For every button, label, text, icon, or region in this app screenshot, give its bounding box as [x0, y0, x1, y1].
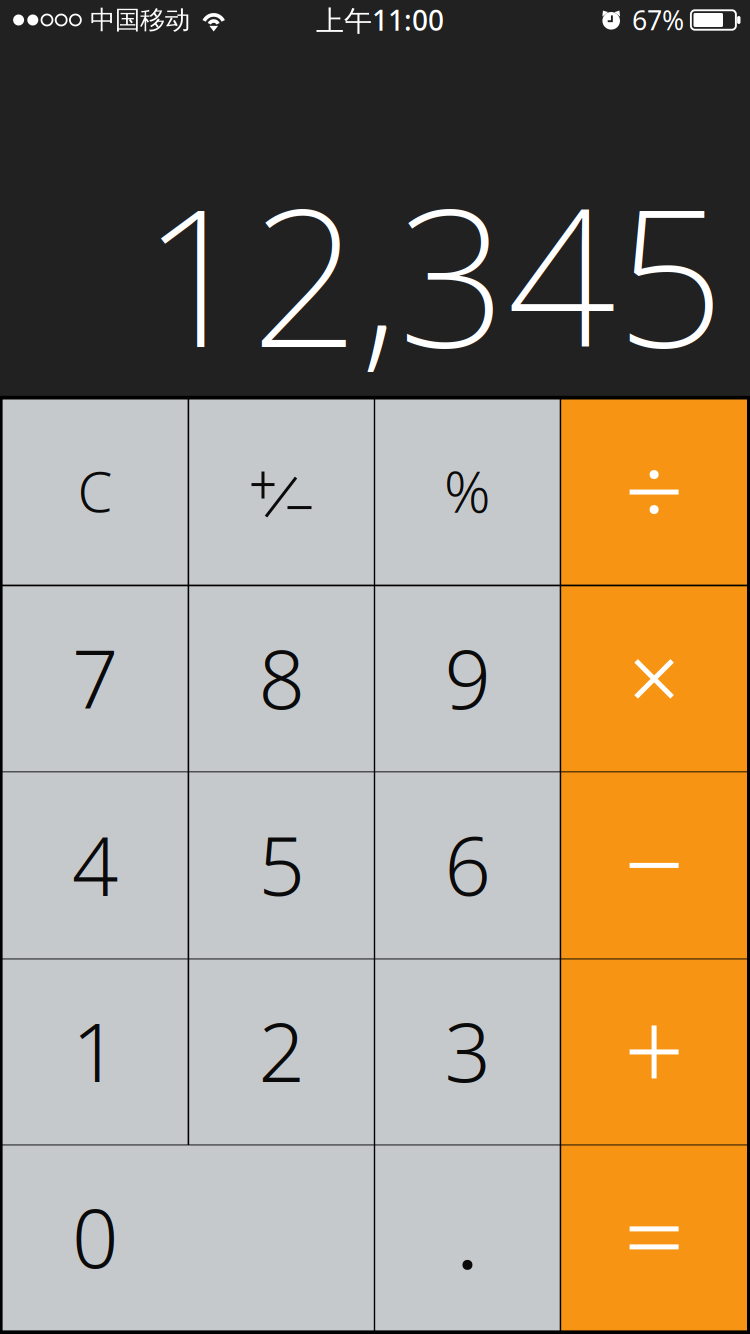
button[interactable]: Equals — [561, 1145, 747, 1330]
button[interactable]: 8 — [189, 586, 374, 771]
button[interactable]: 3 — [375, 959, 560, 1144]
button[interactable]: Plus Minus — [189, 399, 374, 585]
staticText: 7 — [72, 623, 118, 731]
staticText: 67% — [632, 2, 684, 38]
staticText: 8 — [258, 623, 304, 731]
staticText: 0 — [72, 1182, 118, 1290]
staticText: 上午11:00 — [316, 1, 444, 39]
staticText: 2 — [258, 996, 304, 1104]
staticText: 12,345 — [142, 146, 725, 400]
button[interactable]: 1 — [3, 959, 188, 1144]
button[interactable]: Multiply — [561, 586, 747, 771]
button[interactable]: Plus — [561, 959, 747, 1144]
staticText: 6 — [444, 810, 490, 918]
staticText: 中国移动 — [90, 4, 190, 35]
button[interactable]: Decimal point — [375, 1145, 560, 1330]
button[interactable]: 6 — [375, 772, 560, 958]
button[interactable]: 4 — [3, 772, 188, 958]
button[interactable]: Minus — [561, 772, 747, 958]
button[interactable]: 9 — [375, 586, 560, 771]
staticText: 9 — [444, 623, 490, 731]
button[interactable]: Clear — [3, 399, 188, 585]
button[interactable]: 7 — [3, 586, 188, 771]
staticText: 3 — [444, 996, 490, 1104]
staticText: % — [444, 452, 491, 529]
button[interactable]: 2 — [189, 959, 374, 1144]
staticText: 5 — [258, 810, 304, 918]
button[interactable]: Divide — [561, 399, 747, 585]
button[interactable]: 5 — [189, 772, 374, 958]
staticText: C — [78, 453, 113, 528]
button[interactable]: Percent — [375, 399, 560, 585]
staticText: 1 — [72, 996, 118, 1104]
button[interactable]: 0 — [3, 1145, 374, 1330]
staticText: 4 — [72, 810, 118, 918]
